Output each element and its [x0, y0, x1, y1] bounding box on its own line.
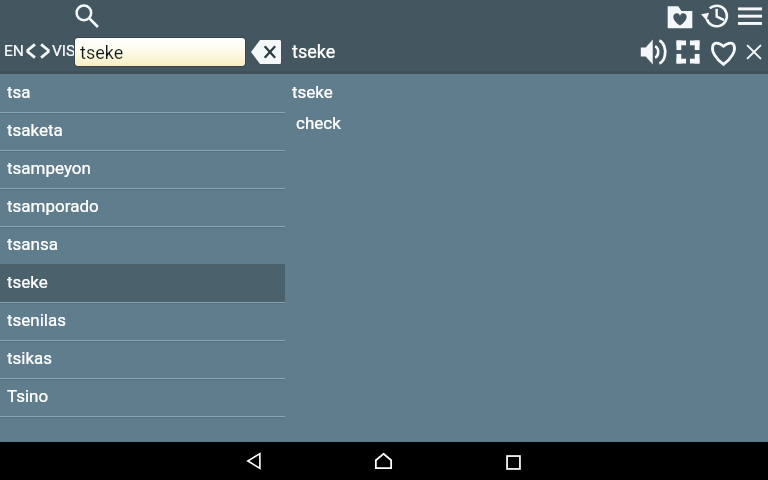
- button[interactable]: Fullscreen: [676, 40, 700, 64]
- staticText: tsansa: [7, 234, 58, 254]
- button[interactable]: Back: [247, 453, 261, 469]
- button[interactable]: Favorite: [710, 39, 737, 66]
- button[interactable]: Close: [744, 42, 764, 62]
- button[interactable]: Favorites: [666, 3, 694, 31]
- button[interactable]: tsaketa: [0, 112, 285, 150]
- staticText: tseke: [292, 41, 336, 62]
- staticText: tsaketa: [7, 120, 63, 140]
- button[interactable]: Search: [74, 3, 100, 29]
- button[interactable]: Home: [375, 453, 392, 469]
- staticText: tsenilas: [7, 310, 67, 330]
- button[interactable]: tseke: [75, 38, 245, 66]
- button[interactable]: tsenilas: [0, 302, 285, 340]
- staticText: tseke: [80, 42, 124, 63]
- staticText: EN: [4, 42, 24, 60]
- staticText: tseke: [7, 272, 48, 292]
- button[interactable]: Tsino: [0, 378, 285, 416]
- button[interactable]: Clear: [251, 40, 281, 64]
- button[interactable]: Recents: [506, 455, 521, 470]
- staticText: Tsino: [7, 386, 49, 406]
- staticText: tsampeyon: [7, 158, 91, 178]
- staticText: VIS: [52, 42, 76, 60]
- button[interactable]: History: [701, 2, 728, 29]
- button[interactable]: Menu: [736, 3, 764, 31]
- staticText: tsa: [7, 82, 31, 102]
- button[interactable]: tsamporado: [0, 188, 285, 226]
- staticText: tsamporado: [7, 196, 99, 216]
- button[interactable]: tseke: [0, 264, 285, 302]
- staticText: tsikas: [7, 348, 53, 368]
- button[interactable]: tsampeyon: [0, 150, 285, 188]
- button[interactable]: tsa: [0, 74, 285, 112]
- staticText: tseke: [292, 82, 333, 102]
- button[interactable]: tsansa: [0, 226, 285, 264]
- button[interactable]: tsikas: [0, 340, 285, 378]
- button[interactable]: Pronounce: [640, 39, 666, 65]
- button[interactable]: EN: [4, 40, 76, 62]
- staticText: check: [296, 113, 341, 133]
